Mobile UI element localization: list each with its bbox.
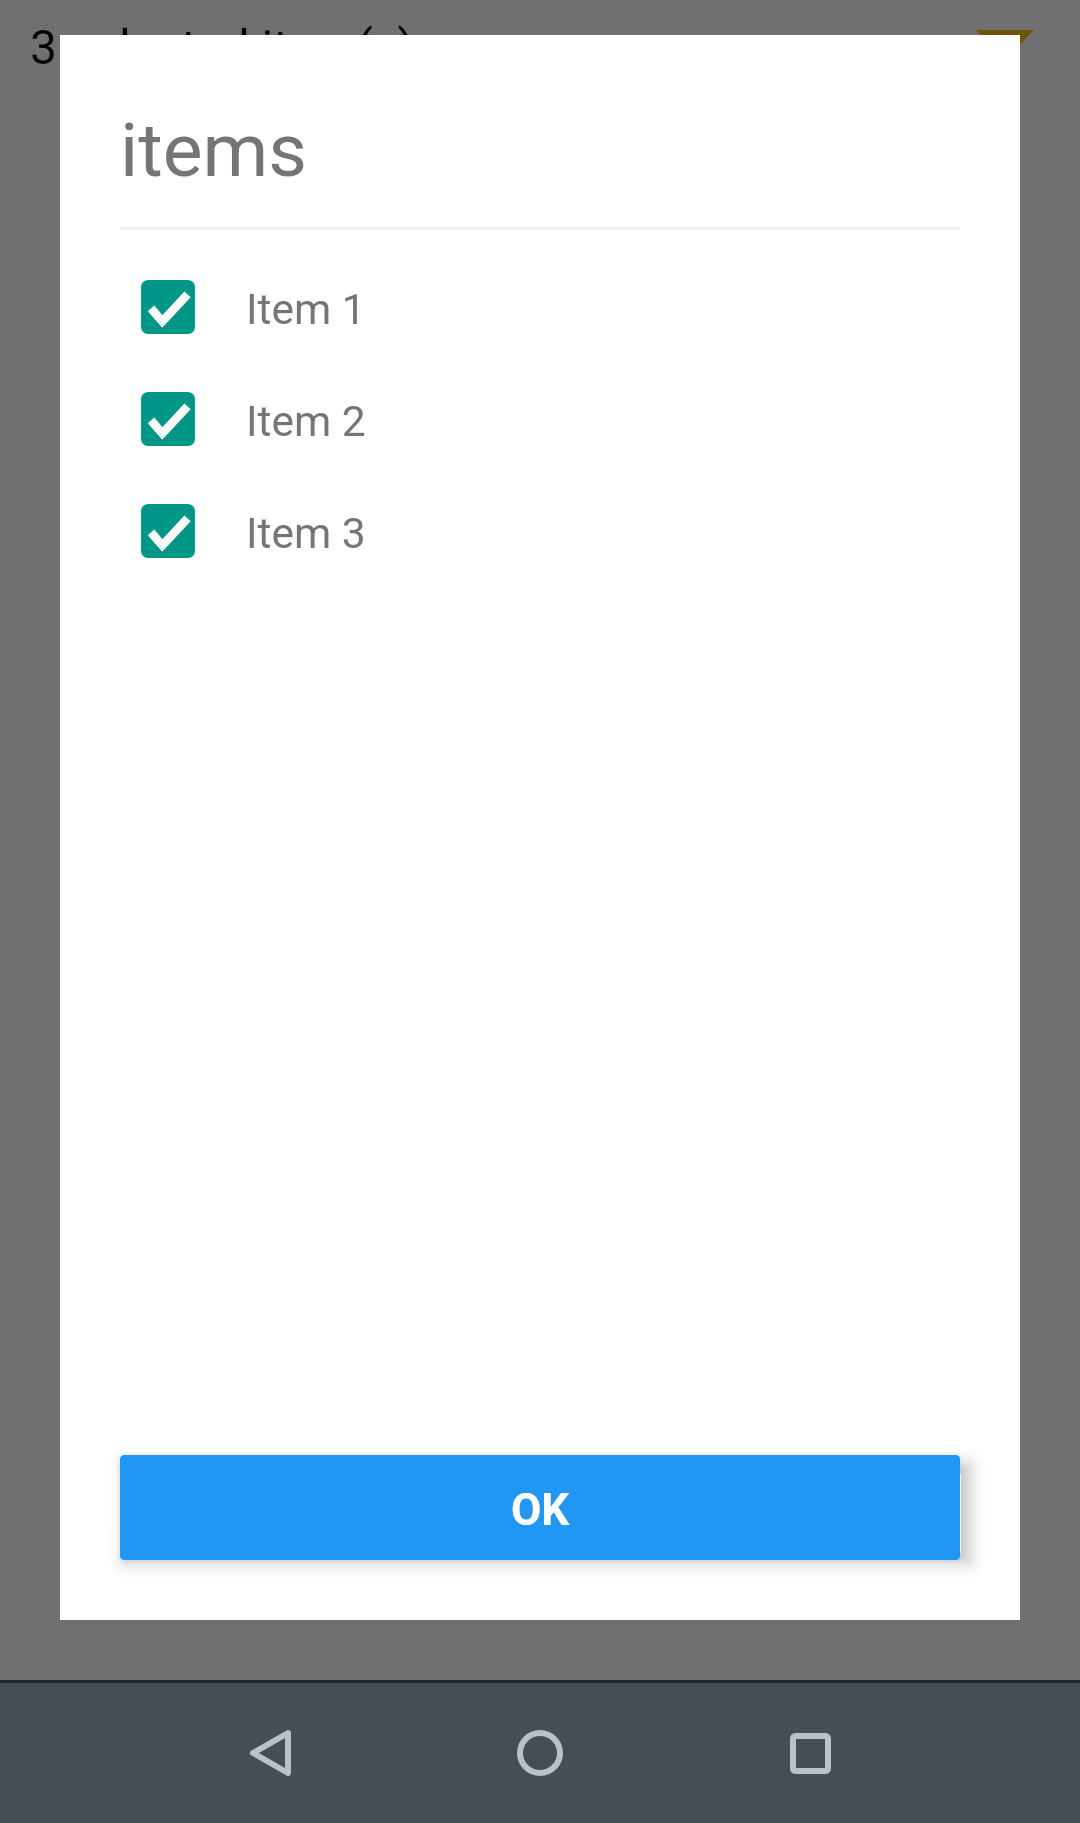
button[interactable]: Home — [450, 1683, 630, 1823]
staticText: 3 selected item(s) — [30, 19, 415, 75]
button[interactable]: Item 2 — [60, 366, 1020, 478]
button[interactable]: Back — [180, 1683, 360, 1823]
staticText: Item 3 — [246, 509, 366, 559]
staticText: Item 1 — [246, 285, 366, 335]
button[interactable]: OK — [120, 1455, 960, 1560]
staticText: Item 2 — [246, 397, 366, 447]
button[interactable]: Recents — [720, 1683, 900, 1823]
button[interactable]: Item 3 — [60, 478, 1020, 590]
staticText: OK — [511, 1484, 570, 1536]
button[interactable]: Item 1 — [60, 254, 1020, 366]
staticText: items — [120, 106, 308, 194]
